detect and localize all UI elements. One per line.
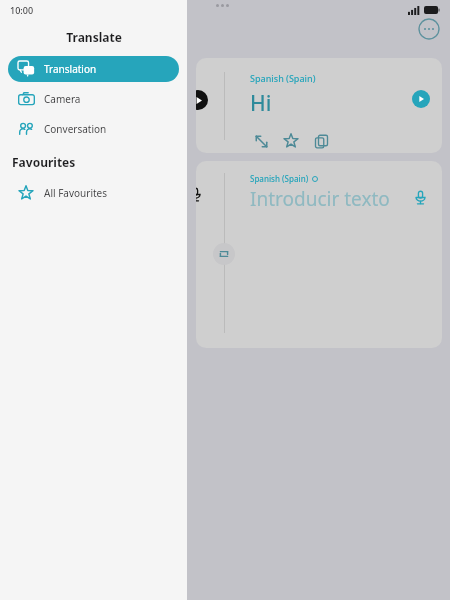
staticText: Introducir texto (250, 186, 390, 212)
button[interactable]: Copy (310, 130, 332, 152)
button[interactable]: Favourite (280, 130, 302, 152)
staticText: Translation (44, 62, 97, 76)
button[interactable]: Swap languages (213, 243, 235, 265)
button[interactable]: Conversation (8, 116, 179, 142)
button[interactable]: Voice input (410, 187, 430, 207)
staticText: All Favourites (44, 186, 108, 200)
button[interactable]: Expand (250, 130, 272, 152)
staticText: Favourites (12, 154, 76, 170)
staticText: Hi (250, 89, 272, 118)
button[interactable]: Play source (196, 58, 442, 153)
button[interactable]: Play translation (412, 90, 430, 108)
staticText: Conversation (44, 122, 107, 136)
button[interactable]: Spanish (Spain) (196, 161, 442, 348)
button[interactable]: Translation (8, 56, 179, 82)
button[interactable]: Camera (8, 86, 179, 112)
staticText: Spanish (Spain) (250, 72, 316, 84)
button[interactable]: More options (418, 18, 440, 40)
button[interactable]: Play source (196, 90, 208, 110)
staticText: 10:00 (10, 4, 34, 16)
staticText: Camera (44, 92, 81, 106)
staticText: Translate (66, 29, 122, 45)
button[interactable]: All Favourites (8, 180, 179, 206)
staticText: Spanish (Spain) (250, 173, 309, 184)
